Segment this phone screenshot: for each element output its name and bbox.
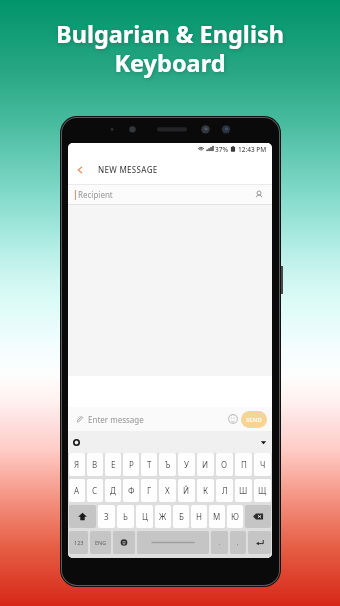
button[interactable]: Х	[159, 479, 176, 502]
staticText: .	[219, 539, 221, 546]
staticText: Ь	[123, 511, 128, 522]
button[interactable]: У	[178, 453, 195, 476]
staticText: А	[74, 485, 80, 496]
button[interactable]: Я	[69, 453, 85, 476]
staticText: Enter message	[88, 414, 144, 425]
button[interactable]: Space	[137, 531, 209, 554]
button[interactable]: Attach	[73, 413, 86, 426]
staticText: ,	[237, 539, 239, 546]
button[interactable]: Ц	[136, 505, 153, 528]
staticText: М	[213, 511, 221, 522]
staticText: Л	[222, 485, 228, 496]
button[interactable]: Backspace	[245, 505, 271, 528]
staticText: П	[241, 459, 247, 470]
button[interactable]: Emoji	[113, 531, 135, 554]
staticText: NEW MESSAGE	[98, 164, 158, 175]
button[interactable]: Shift	[69, 505, 96, 528]
staticText: И	[202, 459, 209, 470]
button[interactable]: Ю	[227, 505, 243, 528]
button[interactable]: Щ	[254, 479, 271, 502]
button[interactable]: В	[87, 453, 103, 476]
staticText: Bulgarian & English Keyboard	[0, 18, 340, 79]
staticText: Т	[147, 459, 152, 470]
button[interactable]: Contacts	[252, 188, 265, 201]
staticText: О	[221, 459, 228, 470]
staticText: Ф	[128, 485, 135, 496]
staticText: Щ	[258, 485, 267, 496]
staticText: Р	[129, 459, 134, 470]
button[interactable]: М	[209, 505, 225, 528]
staticText: Ю	[231, 511, 239, 522]
staticText: К	[203, 485, 208, 496]
button[interactable]: Ч	[254, 453, 271, 476]
staticText: В	[92, 459, 98, 470]
button[interactable]: Д	[105, 479, 121, 502]
staticText: Г	[147, 485, 152, 496]
button[interactable]: Н	[191, 505, 207, 528]
button[interactable]: Emoji	[227, 413, 239, 425]
staticText: Ц	[142, 511, 148, 522]
staticText: Ж	[159, 511, 167, 522]
button[interactable]: З	[98, 505, 115, 528]
staticText: Н	[196, 511, 202, 522]
staticText: 123	[74, 539, 84, 546]
staticText: Д	[110, 485, 116, 496]
button[interactable]: С	[87, 479, 103, 502]
staticText: У	[184, 459, 189, 470]
staticText: ENG	[95, 539, 107, 546]
button[interactable]: Й	[178, 479, 195, 502]
staticText: С	[92, 485, 98, 496]
staticText: SEND	[246, 416, 262, 424]
button[interactable]: Б	[173, 505, 189, 528]
staticText: Е	[111, 459, 116, 470]
staticText: Б	[179, 511, 184, 522]
button[interactable]: ,	[230, 531, 246, 554]
staticText: Ъ	[165, 459, 171, 470]
button[interactable]: П	[235, 453, 252, 476]
button[interactable]: Л	[216, 479, 233, 502]
button[interactable]: О	[216, 453, 233, 476]
button[interactable]: Ф	[123, 479, 139, 502]
button[interactable]: Е	[105, 453, 121, 476]
button[interactable]: SEND	[241, 411, 267, 428]
button[interactable]: Т	[141, 453, 157, 476]
button[interactable]: Г	[141, 479, 157, 502]
button[interactable]: Р	[123, 453, 139, 476]
button[interactable]: Ь	[117, 505, 134, 528]
button[interactable]: Ъ	[159, 453, 176, 476]
staticText: 12:43 PM	[238, 145, 267, 154]
button[interactable]: ENG	[90, 531, 111, 554]
staticText: З	[104, 511, 109, 522]
staticText: Х	[165, 485, 170, 496]
button[interactable]: Ж	[155, 505, 171, 528]
button[interactable]: 123	[69, 531, 88, 554]
staticText: Recipient	[78, 189, 113, 200]
staticText: Ш	[239, 485, 248, 496]
staticText: 37%	[215, 145, 228, 154]
button[interactable]: Back	[68, 155, 92, 184]
staticText: Ч	[260, 459, 266, 470]
staticText: Й	[183, 485, 190, 496]
button[interactable]: К	[197, 479, 214, 502]
staticText: Я	[74, 459, 80, 470]
button[interactable]: И	[197, 453, 214, 476]
button[interactable]: Enter	[248, 531, 271, 554]
button[interactable]: Ш	[235, 479, 252, 502]
button[interactable]: А	[69, 479, 85, 502]
